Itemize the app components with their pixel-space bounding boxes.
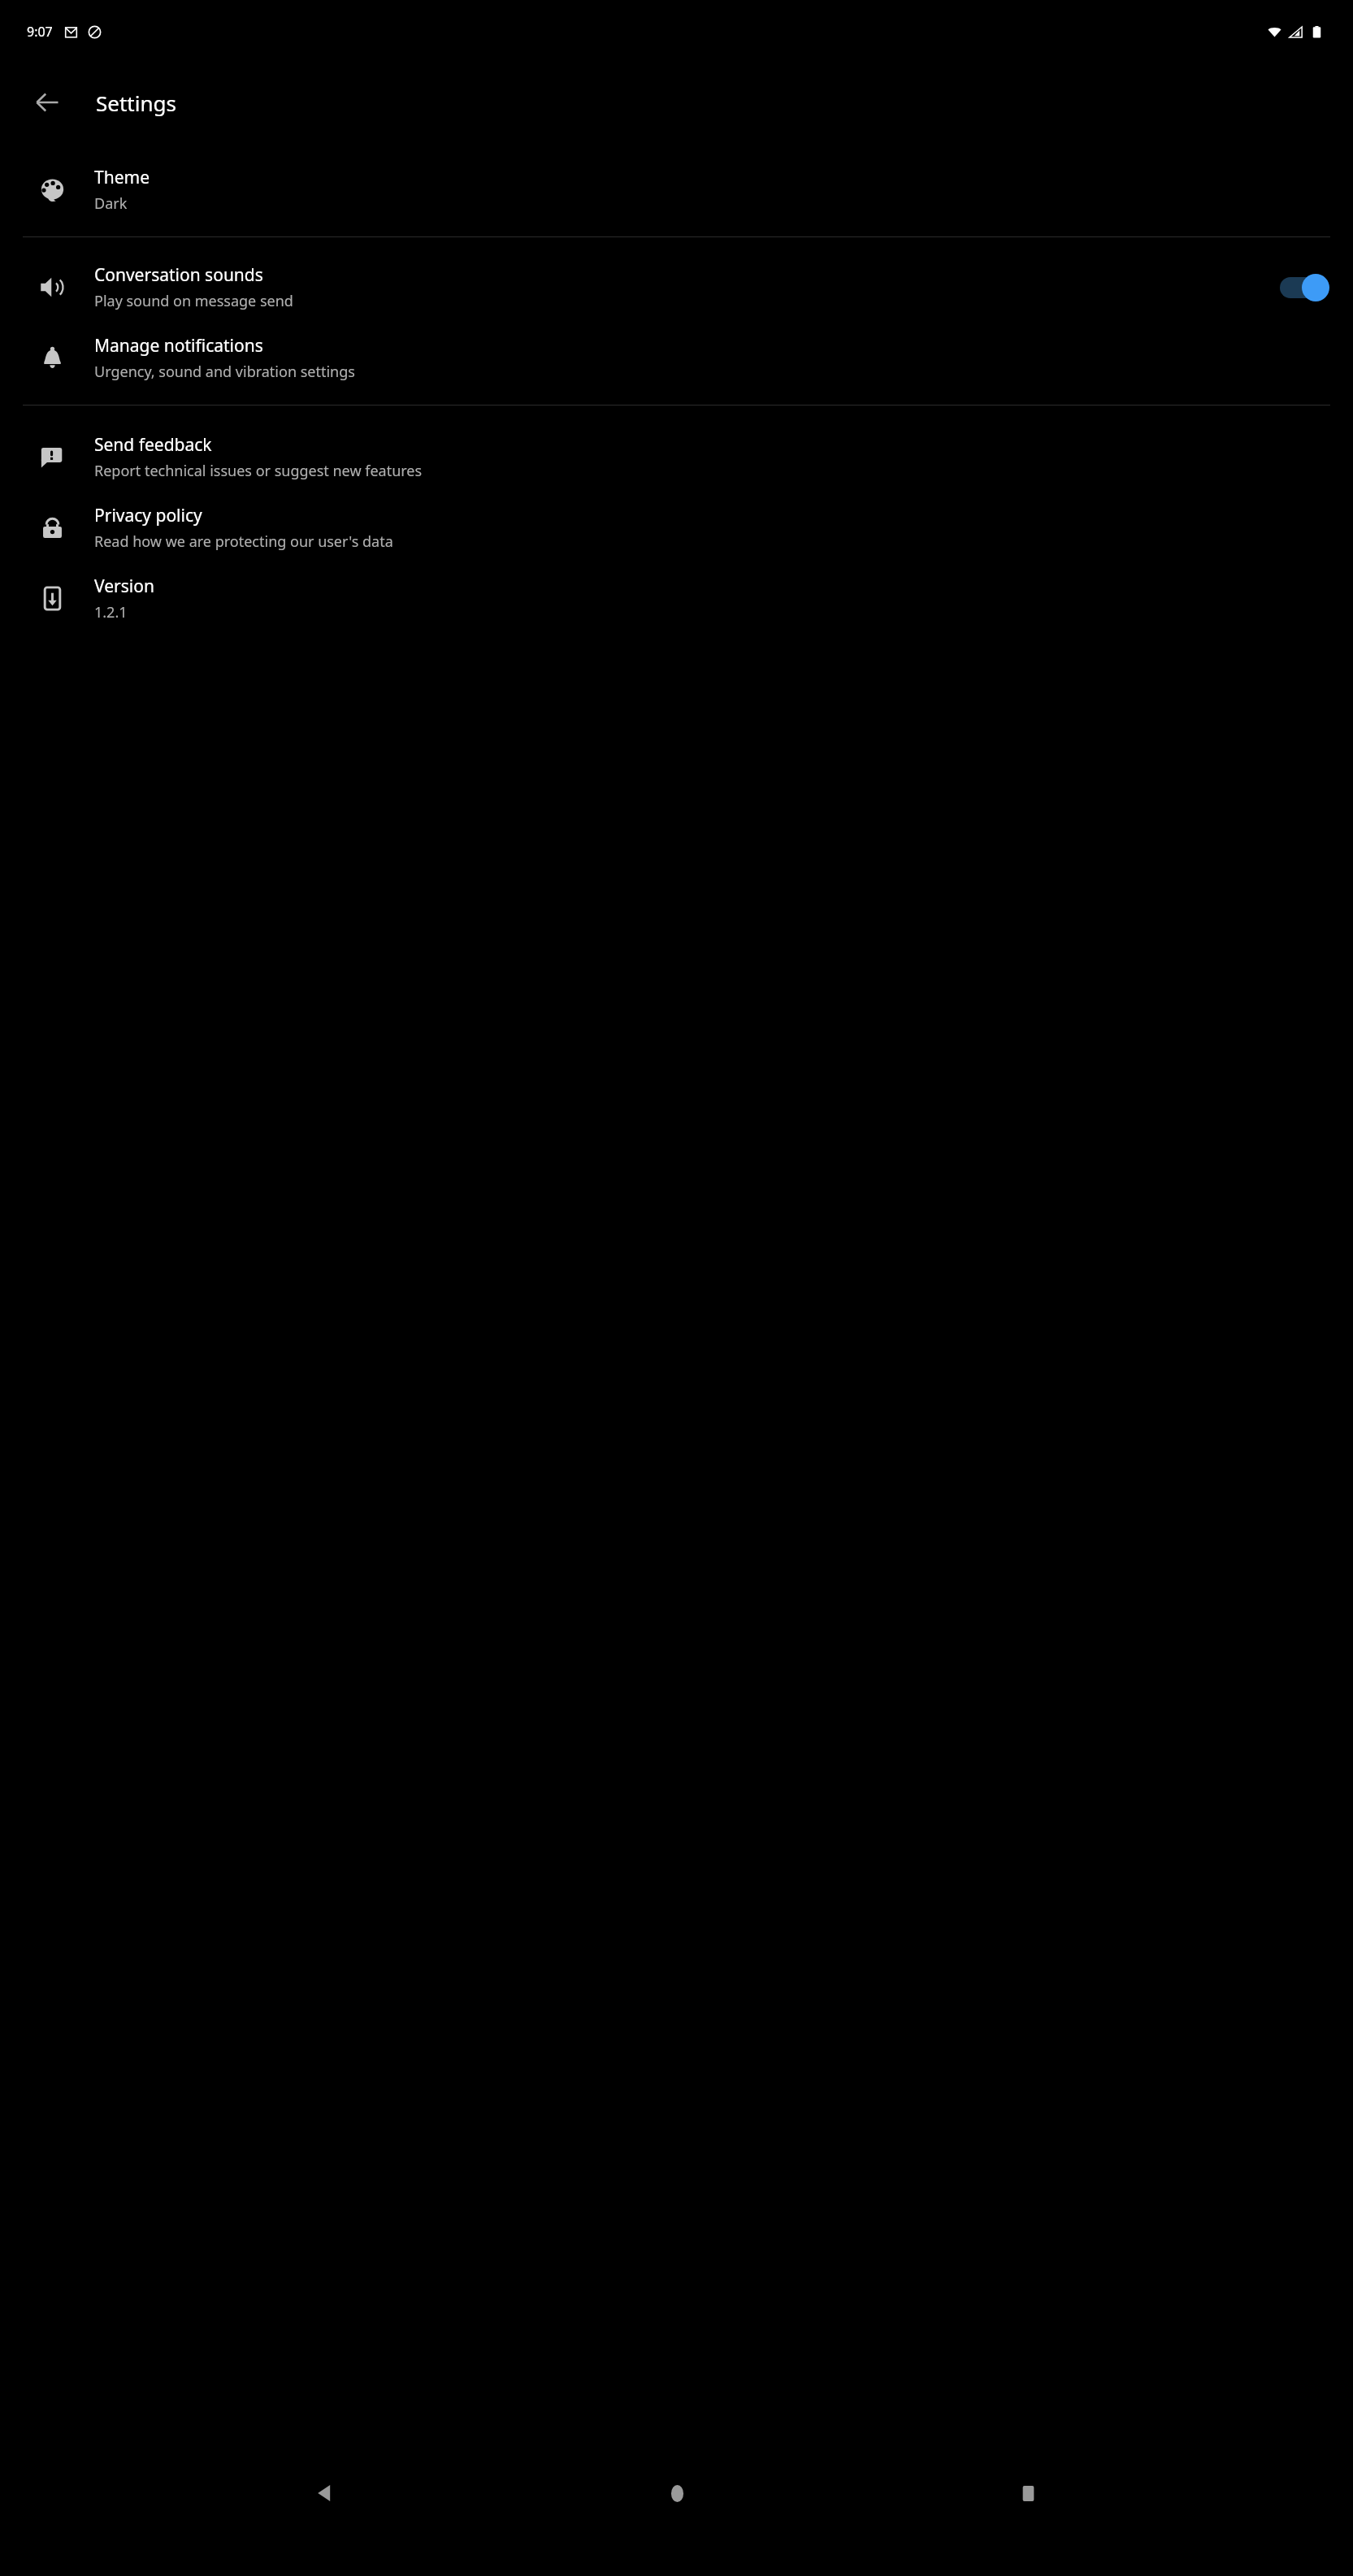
button[interactable]: Home	[651, 2467, 703, 2519]
staticText: Send feedback	[94, 433, 212, 457]
button[interactable]: Privacy policy	[0, 492, 1353, 563]
button[interactable]: Recents	[1002, 2467, 1054, 2519]
staticText: Privacy policy	[94, 504, 202, 527]
button[interactable]: Manage notifications	[0, 323, 1353, 393]
button[interactable]: Conversation sounds toggle	[1280, 271, 1330, 305]
staticText: Urgency, sound and vibration settings	[94, 362, 355, 382]
staticText: Version	[94, 575, 154, 598]
staticText: Theme	[94, 166, 150, 189]
button[interactable]: Version	[0, 563, 1353, 634]
staticText: 9:07	[27, 23, 53, 41]
button[interactable]: Conversation sounds	[0, 252, 1353, 323]
button[interactable]: Send feedback	[0, 422, 1353, 492]
staticText: Manage notifications	[94, 334, 263, 358]
staticText: Play sound on message send	[94, 291, 293, 311]
staticText: Settings	[96, 89, 176, 117]
staticText: Conversation sounds	[94, 263, 263, 287]
button[interactable]: Back	[299, 2467, 351, 2519]
staticText: Read how we are protecting our user's da…	[94, 531, 393, 552]
staticText: Report technical issues or suggest new f…	[94, 461, 423, 481]
staticText: 1.2.1	[94, 602, 128, 622]
button[interactable]: Back	[21, 76, 73, 128]
staticText: Dark	[94, 193, 128, 214]
button[interactable]: Theme	[0, 154, 1353, 225]
